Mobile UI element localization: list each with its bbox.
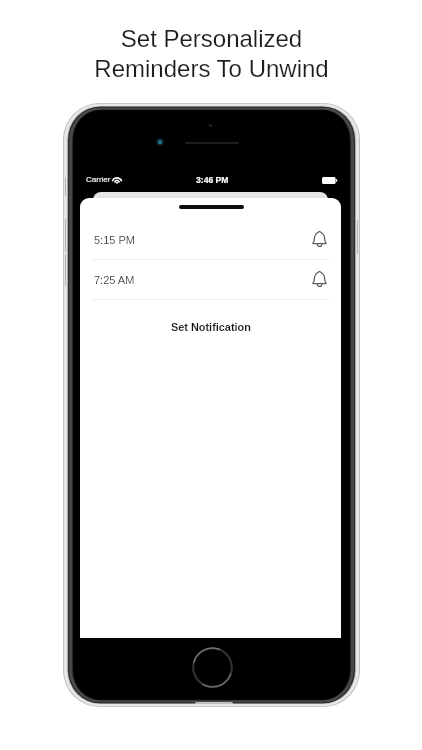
- staticText: Set Notification: [171, 321, 251, 333]
- staticText: 7:25 AM: [94, 274, 135, 286]
- staticText: 3:46 PM: [196, 175, 229, 185]
- staticText: 5:15 PM: [94, 234, 135, 246]
- button[interactable]: 5:15 PM: [80, 220, 341, 260]
- button[interactable]: 7:25 AM: [80, 260, 341, 300]
- staticText: Carrier: [86, 175, 111, 184]
- button[interactable]: Home: [192, 647, 233, 688]
- staticText: Set Personalized Reminders To Unwind: [94, 25, 329, 82]
- button[interactable]: Set Notification: [80, 308, 341, 345]
